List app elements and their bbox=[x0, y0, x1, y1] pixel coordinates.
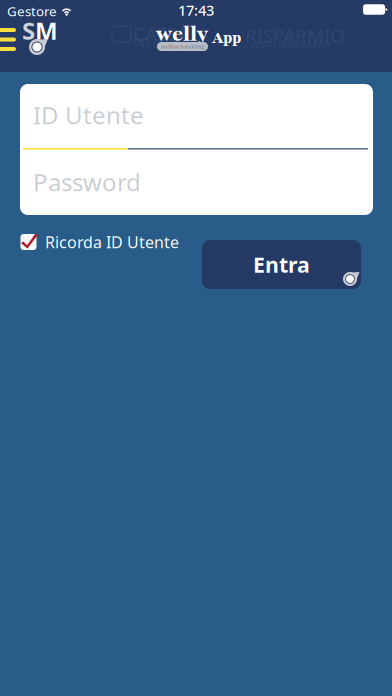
staticText: RISPARMIO bbox=[245, 23, 345, 48]
staticText: DI SAN MARINO S.p.A bbox=[250, 39, 330, 50]
staticText: ID Utente bbox=[33, 99, 144, 131]
staticText: DELLA REP bbox=[133, 35, 188, 50]
staticText: Gestore bbox=[7, 2, 57, 20]
staticText: Ricorda ID Utente bbox=[45, 231, 179, 253]
staticText: S bbox=[22, 15, 35, 46]
button[interactable]: Ricorda ID Utente bbox=[21, 233, 191, 251]
staticText: Entra bbox=[253, 250, 310, 279]
staticText: CASSA bbox=[133, 21, 189, 46]
staticText: M bbox=[35, 15, 58, 46]
staticText: App bbox=[212, 28, 241, 48]
staticText: online banking bbox=[161, 42, 204, 50]
staticText: 17:43 bbox=[178, 0, 214, 20]
button[interactable]: Entra bbox=[202, 240, 361, 289]
staticText: Password bbox=[33, 166, 141, 198]
staticText: welly bbox=[155, 20, 209, 48]
